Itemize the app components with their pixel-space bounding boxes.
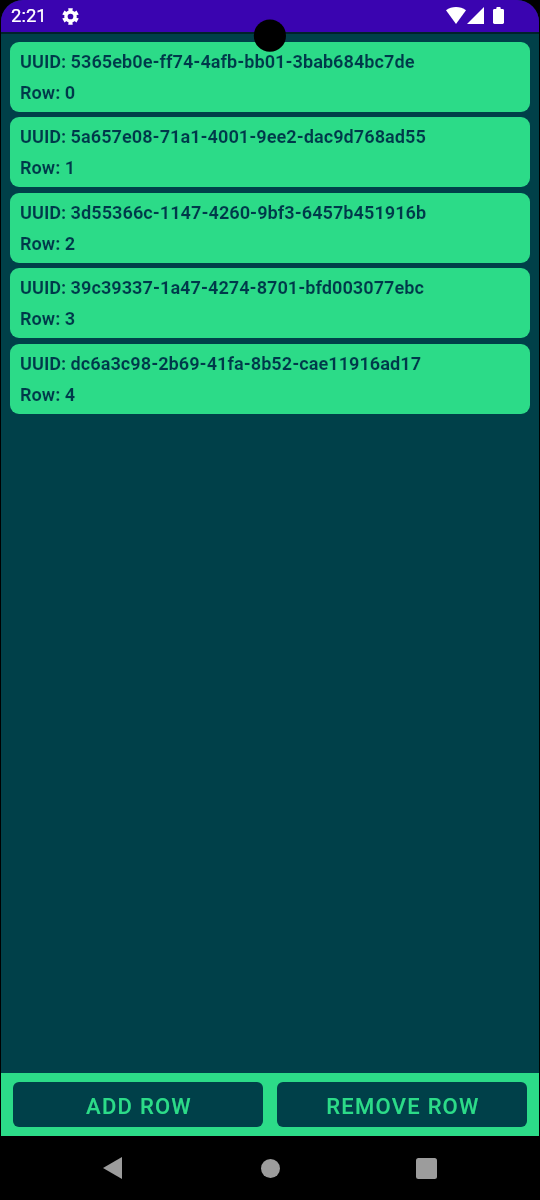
staticText: Row: 3 [20, 308, 76, 329]
button[interactable]: ADD ROW [13, 1082, 263, 1127]
staticText: UUID: 3d55366c-1147-4260-9bf3-6457b45191… [20, 202, 427, 223]
staticText: 2:21 [11, 5, 47, 27]
staticText: UUID: 39c39337-1a47-4274-8701-bfd003077e… [20, 277, 424, 298]
staticText: UUID: 5a657e08-71a1-4001-9ee2-dac9d768ad… [20, 126, 426, 147]
staticText: Row: 4 [20, 384, 76, 405]
button[interactable]: Back [86, 1136, 138, 1200]
button[interactable]: Recent apps [400, 1136, 452, 1200]
button[interactable]: UUID: 39c39337-1a47-4274-8701-bfd003077e… [10, 268, 530, 338]
staticText: UUID: 5365eb0e-ff74-4afb-bb01-3bab684bc7… [20, 51, 415, 72]
staticText: REMOVE ROW [326, 1094, 480, 1120]
staticText: Row: 2 [20, 233, 76, 254]
button[interactable]: Home [244, 1136, 296, 1200]
button[interactable]: UUID: dc6a3c98-2b69-41fa-8b52-cae11916ad… [10, 344, 530, 414]
button[interactable]: UUID: 5365eb0e-ff74-4afb-bb01-3bab684bc7… [10, 42, 530, 112]
button[interactable]: UUID: 3d55366c-1147-4260-9bf3-6457b45191… [10, 193, 530, 263]
staticText: Row: 0 [20, 82, 76, 103]
button[interactable]: UUID: 5a657e08-71a1-4001-9ee2-dac9d768ad… [10, 117, 530, 187]
staticText: ADD ROW [86, 1094, 192, 1120]
staticText: Row: 1 [20, 157, 76, 178]
button[interactable]: REMOVE ROW [277, 1082, 527, 1127]
staticText: UUID: dc6a3c98-2b69-41fa-8b52-cae11916ad… [20, 353, 422, 374]
